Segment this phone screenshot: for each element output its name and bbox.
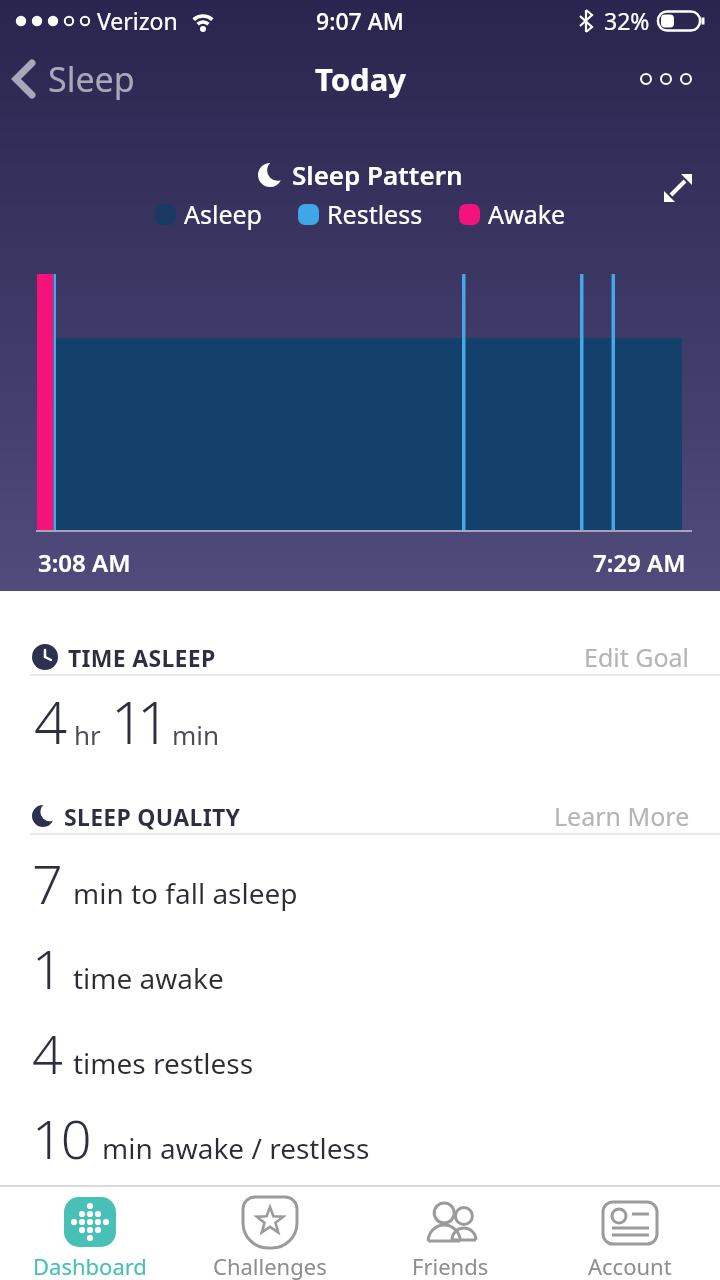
staticText: 7 — [32, 846, 61, 920]
button[interactable]: Sleep — [12, 56, 135, 102]
staticText: 7:29 AM — [593, 546, 686, 579]
staticText: 11 — [111, 682, 164, 761]
staticText: 9:07 AM — [316, 5, 404, 36]
button[interactable]: Account — [540, 1187, 720, 1280]
button[interactable]: Challenges — [180, 1187, 360, 1280]
staticText: 10 — [32, 1101, 90, 1175]
button[interactable] — [640, 72, 696, 86]
staticText: times restless — [73, 1044, 254, 1082]
staticText: min — [172, 717, 220, 752]
staticText: hr — [74, 717, 101, 752]
staticText: 32% — [604, 5, 650, 36]
button[interactable]: Edit Goal — [584, 640, 690, 674]
staticText: 4 — [32, 1016, 61, 1090]
staticText: Dashboard — [33, 1251, 147, 1280]
staticText: Learn More — [554, 799, 690, 833]
button[interactable] — [662, 172, 694, 204]
staticText: Today — [315, 58, 406, 100]
staticText: Account — [588, 1251, 672, 1280]
staticText: Restless — [327, 197, 423, 231]
staticText: 4 — [34, 682, 66, 761]
button[interactable]: Dashboard — [0, 1187, 180, 1280]
staticText: 1 — [32, 931, 61, 1005]
staticText: Verizon — [97, 5, 178, 36]
staticText: min awake / restless — [102, 1129, 370, 1167]
staticText: TIME ASLEEP — [68, 642, 216, 673]
staticText: Sleep Pattern — [292, 157, 463, 192]
staticText: Edit Goal — [584, 640, 690, 674]
staticText: Awake — [488, 197, 566, 231]
button[interactable]: Learn More — [554, 799, 690, 833]
staticText: min to fall asleep — [73, 874, 298, 912]
staticText: Challenges — [213, 1251, 327, 1280]
staticText: Asleep — [184, 197, 262, 231]
staticText: Sleep — [48, 56, 135, 102]
button[interactable]: Friends — [360, 1187, 540, 1280]
staticText: 3:08 AM — [38, 546, 131, 579]
staticText: Friends — [412, 1251, 489, 1280]
staticText: SLEEP QUALITY — [64, 801, 241, 832]
staticText: time awake — [73, 959, 224, 997]
